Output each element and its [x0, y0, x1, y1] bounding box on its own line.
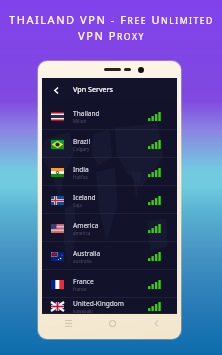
staticText: Brazil	[73, 137, 91, 146]
staticText: Vpn Servers	[73, 84, 114, 94]
staticText: Thailand	[73, 109, 100, 118]
button[interactable]: India	[42, 158, 177, 186]
button[interactable]: France	[42, 270, 177, 298]
button[interactable]: America	[42, 214, 177, 242]
button[interactable]: Brazil	[42, 130, 177, 158]
button[interactable]: Thailand	[42, 102, 177, 130]
staticText: THAILAND VPN - FREE UNLIMITED	[9, 12, 214, 27]
staticText: america	[73, 230, 91, 236]
staticText: australia	[73, 258, 92, 264]
staticText: Calgary	[73, 146, 90, 152]
button[interactable]: Recent apps	[60, 315, 76, 331]
staticText: Halifax	[73, 174, 88, 180]
staticText: France	[73, 277, 94, 286]
button[interactable]: Back	[148, 315, 164, 331]
button[interactable]: United-Kingdom	[42, 298, 177, 314]
button[interactable]: Australia	[42, 242, 177, 270]
staticText: Australia	[73, 249, 101, 258]
button[interactable]: Back	[49, 83, 63, 97]
staticText: Saja	[73, 202, 82, 208]
staticText: India	[73, 165, 89, 174]
staticText: france	[73, 286, 87, 292]
staticText: VPN PROXY	[78, 28, 145, 43]
staticText: Milion	[73, 118, 87, 124]
staticText: United-Kingdom	[73, 299, 124, 308]
button[interactable]: Home	[104, 315, 120, 331]
staticText: Iceland	[73, 193, 96, 202]
button[interactable]: Iceland	[42, 186, 177, 214]
staticText: kawasaki	[73, 308, 93, 314]
staticText: America	[73, 221, 99, 230]
